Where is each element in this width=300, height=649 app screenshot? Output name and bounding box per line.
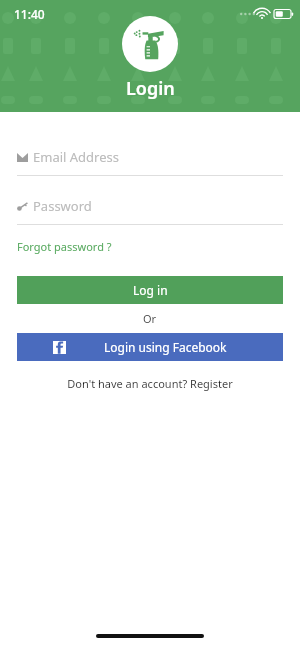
staticText: Email Address	[33, 148, 119, 166]
staticText: Forgot password ?	[17, 239, 112, 254]
staticText: Login	[126, 76, 175, 101]
other: Spray bottle logo	[133, 27, 167, 61]
button[interactable]: Password	[17, 197, 283, 225]
staticText: Password	[33, 197, 92, 215]
staticText: 11:40	[14, 6, 45, 22]
button[interactable]: Don't have an account? Register	[0, 376, 300, 391]
staticText: Or	[143, 311, 157, 326]
staticText: Log in	[133, 282, 168, 298]
staticText: Don't have an account? Register	[67, 376, 233, 391]
button[interactable]: Email Address	[17, 148, 283, 176]
button[interactable]: Forgot password ?	[17, 239, 112, 254]
staticText: Login using Facebook	[104, 339, 227, 355]
button[interactable]: Log in	[17, 276, 283, 304]
button[interactable]: Login using Facebook	[17, 333, 283, 361]
